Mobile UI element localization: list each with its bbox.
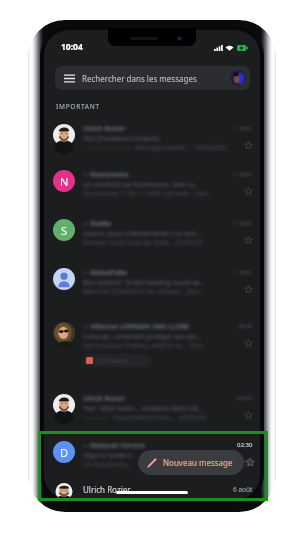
- staticText: 02:30: [237, 441, 253, 449]
- staticText: Un vendredi sur Numerama : bien lu,: [83, 180, 196, 189]
- staticText: 18:45: [237, 322, 253, 330]
- other: Suivi: [246, 458, 255, 467]
- staticText: 1 sept.: [234, 124, 253, 132]
- staticText: WAN FAT COMMENT for renewe... (You: [83, 287, 200, 296]
- staticText: S: [61, 223, 68, 238]
- staticText: Nat le puissa Chabeu, valid et sa... (Yo…: [83, 341, 204, 350]
- other: Suivi: [244, 285, 253, 294]
- other: Suivi: [244, 411, 253, 420]
- staticText: Achever votre essai de Stadi... 03/04/20: [83, 238, 203, 247]
- staticText: IG_Candidat...: [96, 357, 132, 364]
- staticText: 10:04: [61, 41, 83, 53]
- other: Suivi: [244, 458, 253, 467]
- button[interactable]: Villeurar LORRAIN VAN LLORE: [44, 318, 260, 390]
- staticText: Numerama: [90, 170, 128, 180]
- button[interactable]: Ulrich Rozier: [44, 480, 260, 500]
- button[interactable]: Nouveau message: [138, 450, 244, 475]
- staticText: Test : NEW matin... Invitation BeIN UB..…: [83, 404, 204, 413]
- button[interactable]: Ulrich Rozier: [44, 390, 260, 437]
- staticText: Nouveau message: [163, 457, 233, 468]
- staticText: GlobalFabs: [90, 268, 127, 278]
- staticText: 09:43: [237, 394, 253, 402]
- staticText: Ulrich Rozier: [83, 124, 126, 134]
- other: Suivi: [244, 187, 253, 196]
- button[interactable]: Compte: [230, 70, 246, 86]
- staticText: Rechercher dans les messages: [82, 73, 230, 84]
- staticText: Stadia: [90, 219, 111, 229]
- staticText: Ulrich Rozier: [83, 484, 233, 495]
- button[interactable]: Menu: [55, 66, 250, 90]
- staticText: Test (Frandroid Contacts): [83, 134, 159, 143]
- staticText: D: [60, 445, 69, 460]
- other: Suivi: [244, 141, 253, 150]
- staticText: 1 sept.: [234, 268, 253, 276]
- staticText: 1 sept.: [234, 170, 253, 178]
- other: Suivi: [244, 339, 253, 348]
- staticText: Bon Gamers' 18 Min funding round an...: [83, 278, 206, 287]
- staticText: N: [60, 174, 69, 189]
- staticText: ———— Conversation trans... 20/05/20: [83, 413, 206, 422]
- staticText: Olga ns Sortie e...: [83, 451, 137, 460]
- staticText: ——————— Message transfé... 16/04/2021: [86, 143, 229, 152]
- staticText: Deborah Ferrere: [90, 441, 146, 451]
- button[interactable]: Ulrich Rozier: [44, 120, 260, 166]
- staticText: Coms.ab : comment protéger son act...: [83, 332, 202, 341]
- staticText: Ulrich Rozier: [83, 394, 126, 404]
- staticText: Numerama ? 136 11 1080 une web... (You: [83, 189, 209, 198]
- staticText: Villeurar LORRAIN VAN LLORE: [90, 322, 190, 332]
- button[interactable]: N: [44, 166, 260, 215]
- other: Menu: [64, 74, 75, 83]
- staticText: 1 sept.: [234, 219, 253, 227]
- button[interactable]: D: [44, 437, 260, 480]
- staticText: 6 août: [233, 485, 253, 494]
- button[interactable]: IG_Candidat...: [83, 354, 151, 367]
- staticText: Lauren, jouez à Borderlands 3 ce wee...: [83, 229, 202, 238]
- button[interactable]: GlobalFabs: [44, 264, 260, 318]
- staticText: Un Passion fre...: [83, 460, 133, 469]
- other: Suivi: [244, 236, 253, 245]
- button[interactable]: S: [44, 215, 260, 264]
- staticText: IMPORTANT: [56, 102, 100, 111]
